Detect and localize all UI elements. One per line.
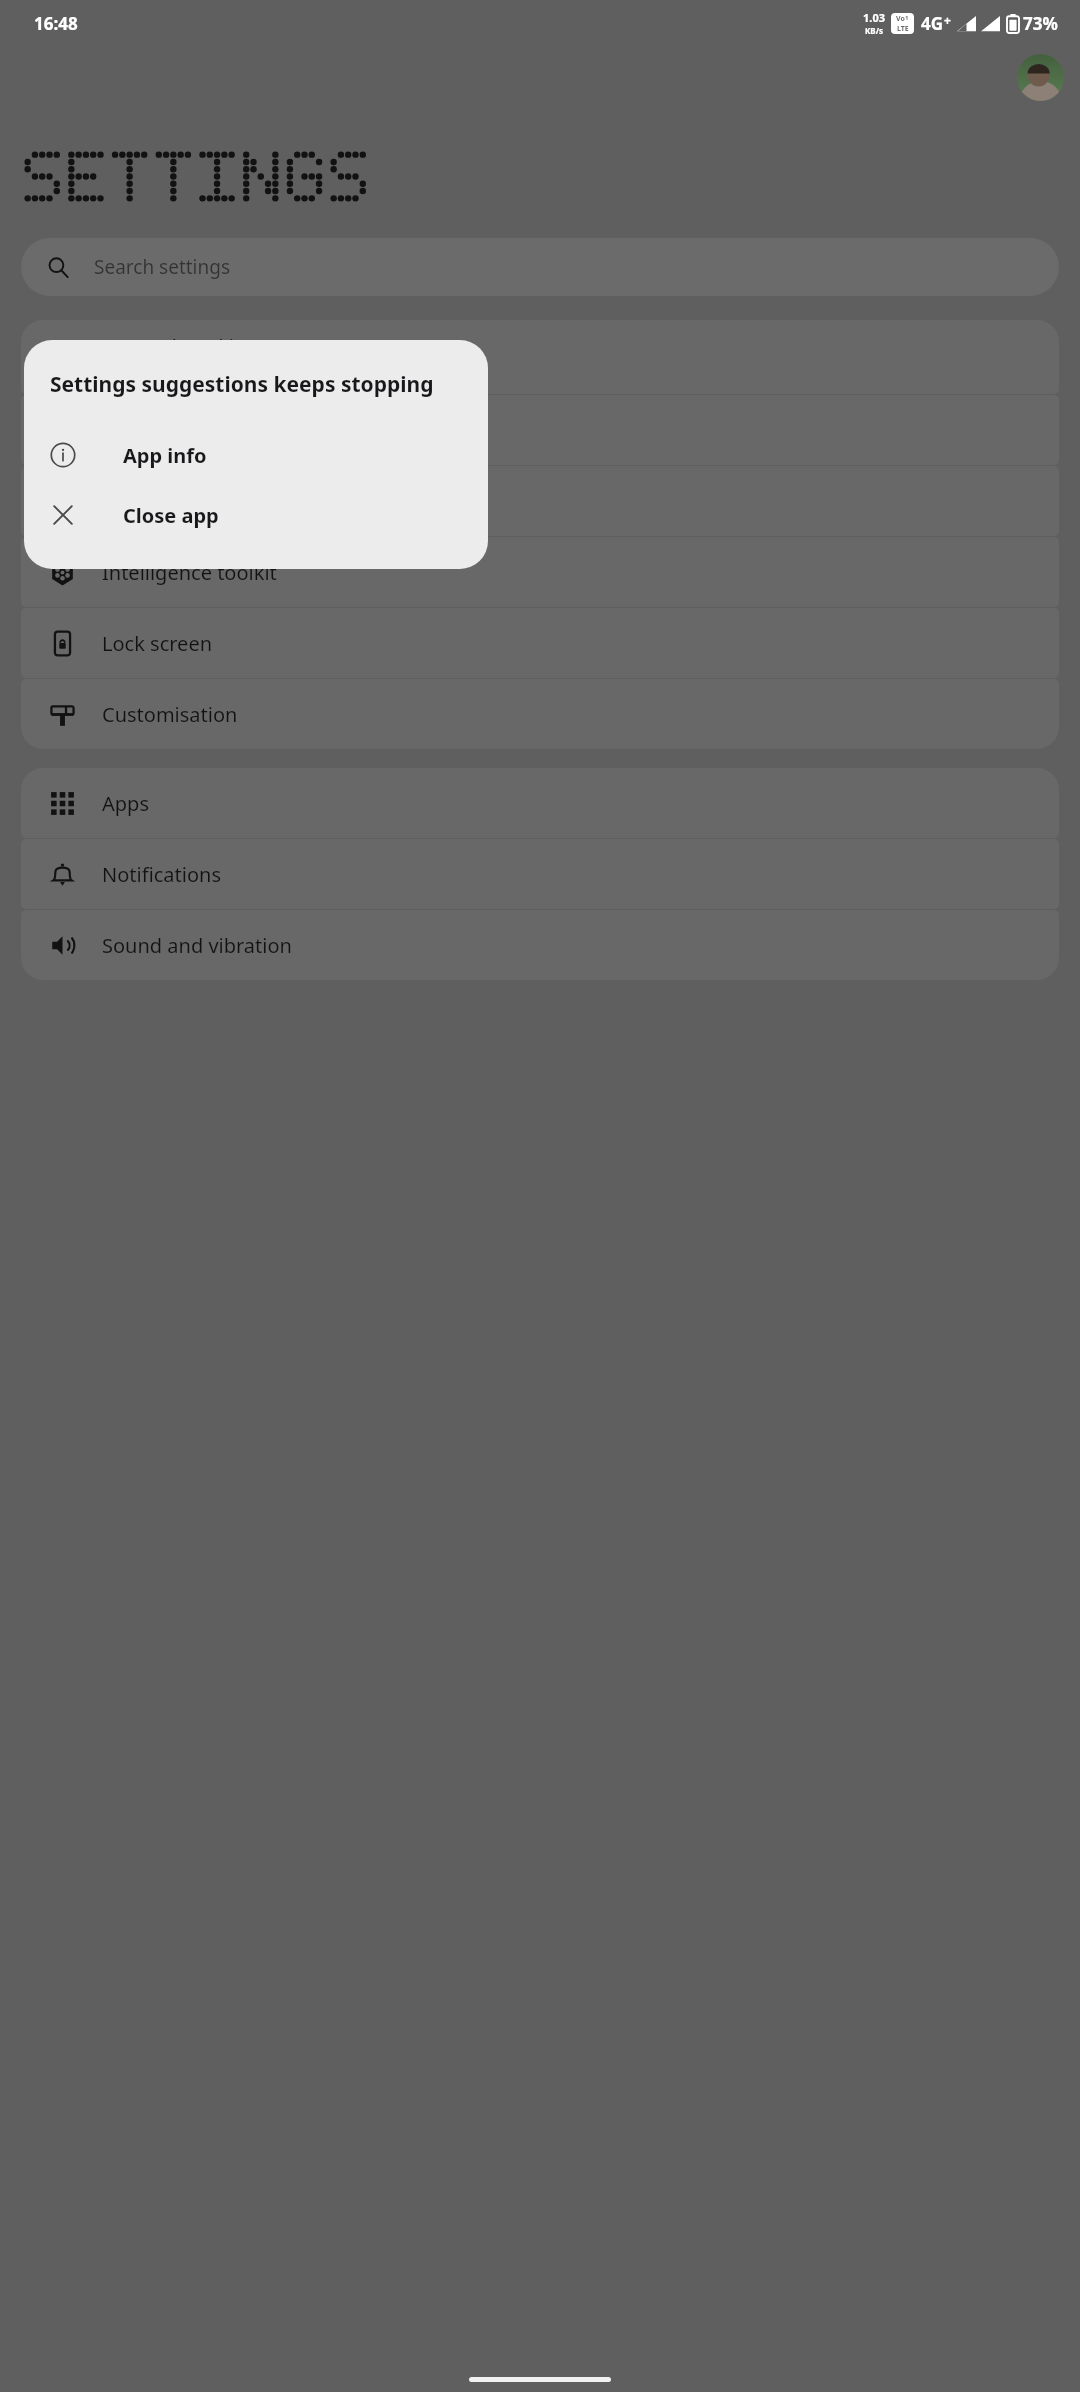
button[interactable]: Account — [1017, 54, 1064, 101]
staticText: Vo — [896, 14, 905, 24]
button[interactable]: Search settings — [21, 238, 1059, 296]
staticText: 16:48 — [34, 12, 78, 35]
staticText: Lock screen — [102, 630, 213, 657]
button[interactable]: App info — [24, 425, 488, 485]
button[interactable]: Close app — [24, 485, 488, 545]
staticText: Customisation — [102, 701, 238, 728]
staticText: Intelligence toolkit — [102, 559, 277, 586]
staticText: Apps — [102, 790, 149, 817]
staticText: 4G — [921, 12, 944, 35]
staticText: Display — [102, 488, 171, 515]
staticText: Notifications — [102, 861, 221, 888]
button[interactable]: Sound and vibration — [21, 910, 1059, 980]
button[interactable]: Intelligence toolkit — [21, 537, 1059, 607]
staticText: JIO 4G — [102, 362, 144, 381]
button[interactable]: Display — [21, 466, 1059, 536]
staticText: Network and internet — [102, 333, 304, 360]
staticText: Sound and vibration — [102, 932, 292, 959]
button[interactable]: Apps — [21, 768, 1059, 838]
staticText: Search settings — [94, 254, 231, 280]
staticText: 1 — [905, 14, 909, 22]
staticText: Close app — [123, 502, 219, 529]
button[interactable]: Notifications — [21, 839, 1059, 909]
staticText: LTE — [897, 24, 909, 34]
button[interactable]: Lock screen — [21, 608, 1059, 678]
staticText: 73% — [1023, 12, 1058, 35]
staticText: + — [944, 12, 951, 28]
button[interactable]: Customisation — [21, 679, 1059, 749]
staticText: KB/s — [865, 25, 883, 36]
button[interactable]: Network and internet — [21, 320, 1059, 394]
button[interactable]: Connected devices — [21, 395, 1059, 465]
staticText: App info — [123, 442, 207, 469]
staticText: 1.03 — [863, 10, 885, 25]
staticText: Settings suggestions keeps stopping — [50, 370, 434, 399]
